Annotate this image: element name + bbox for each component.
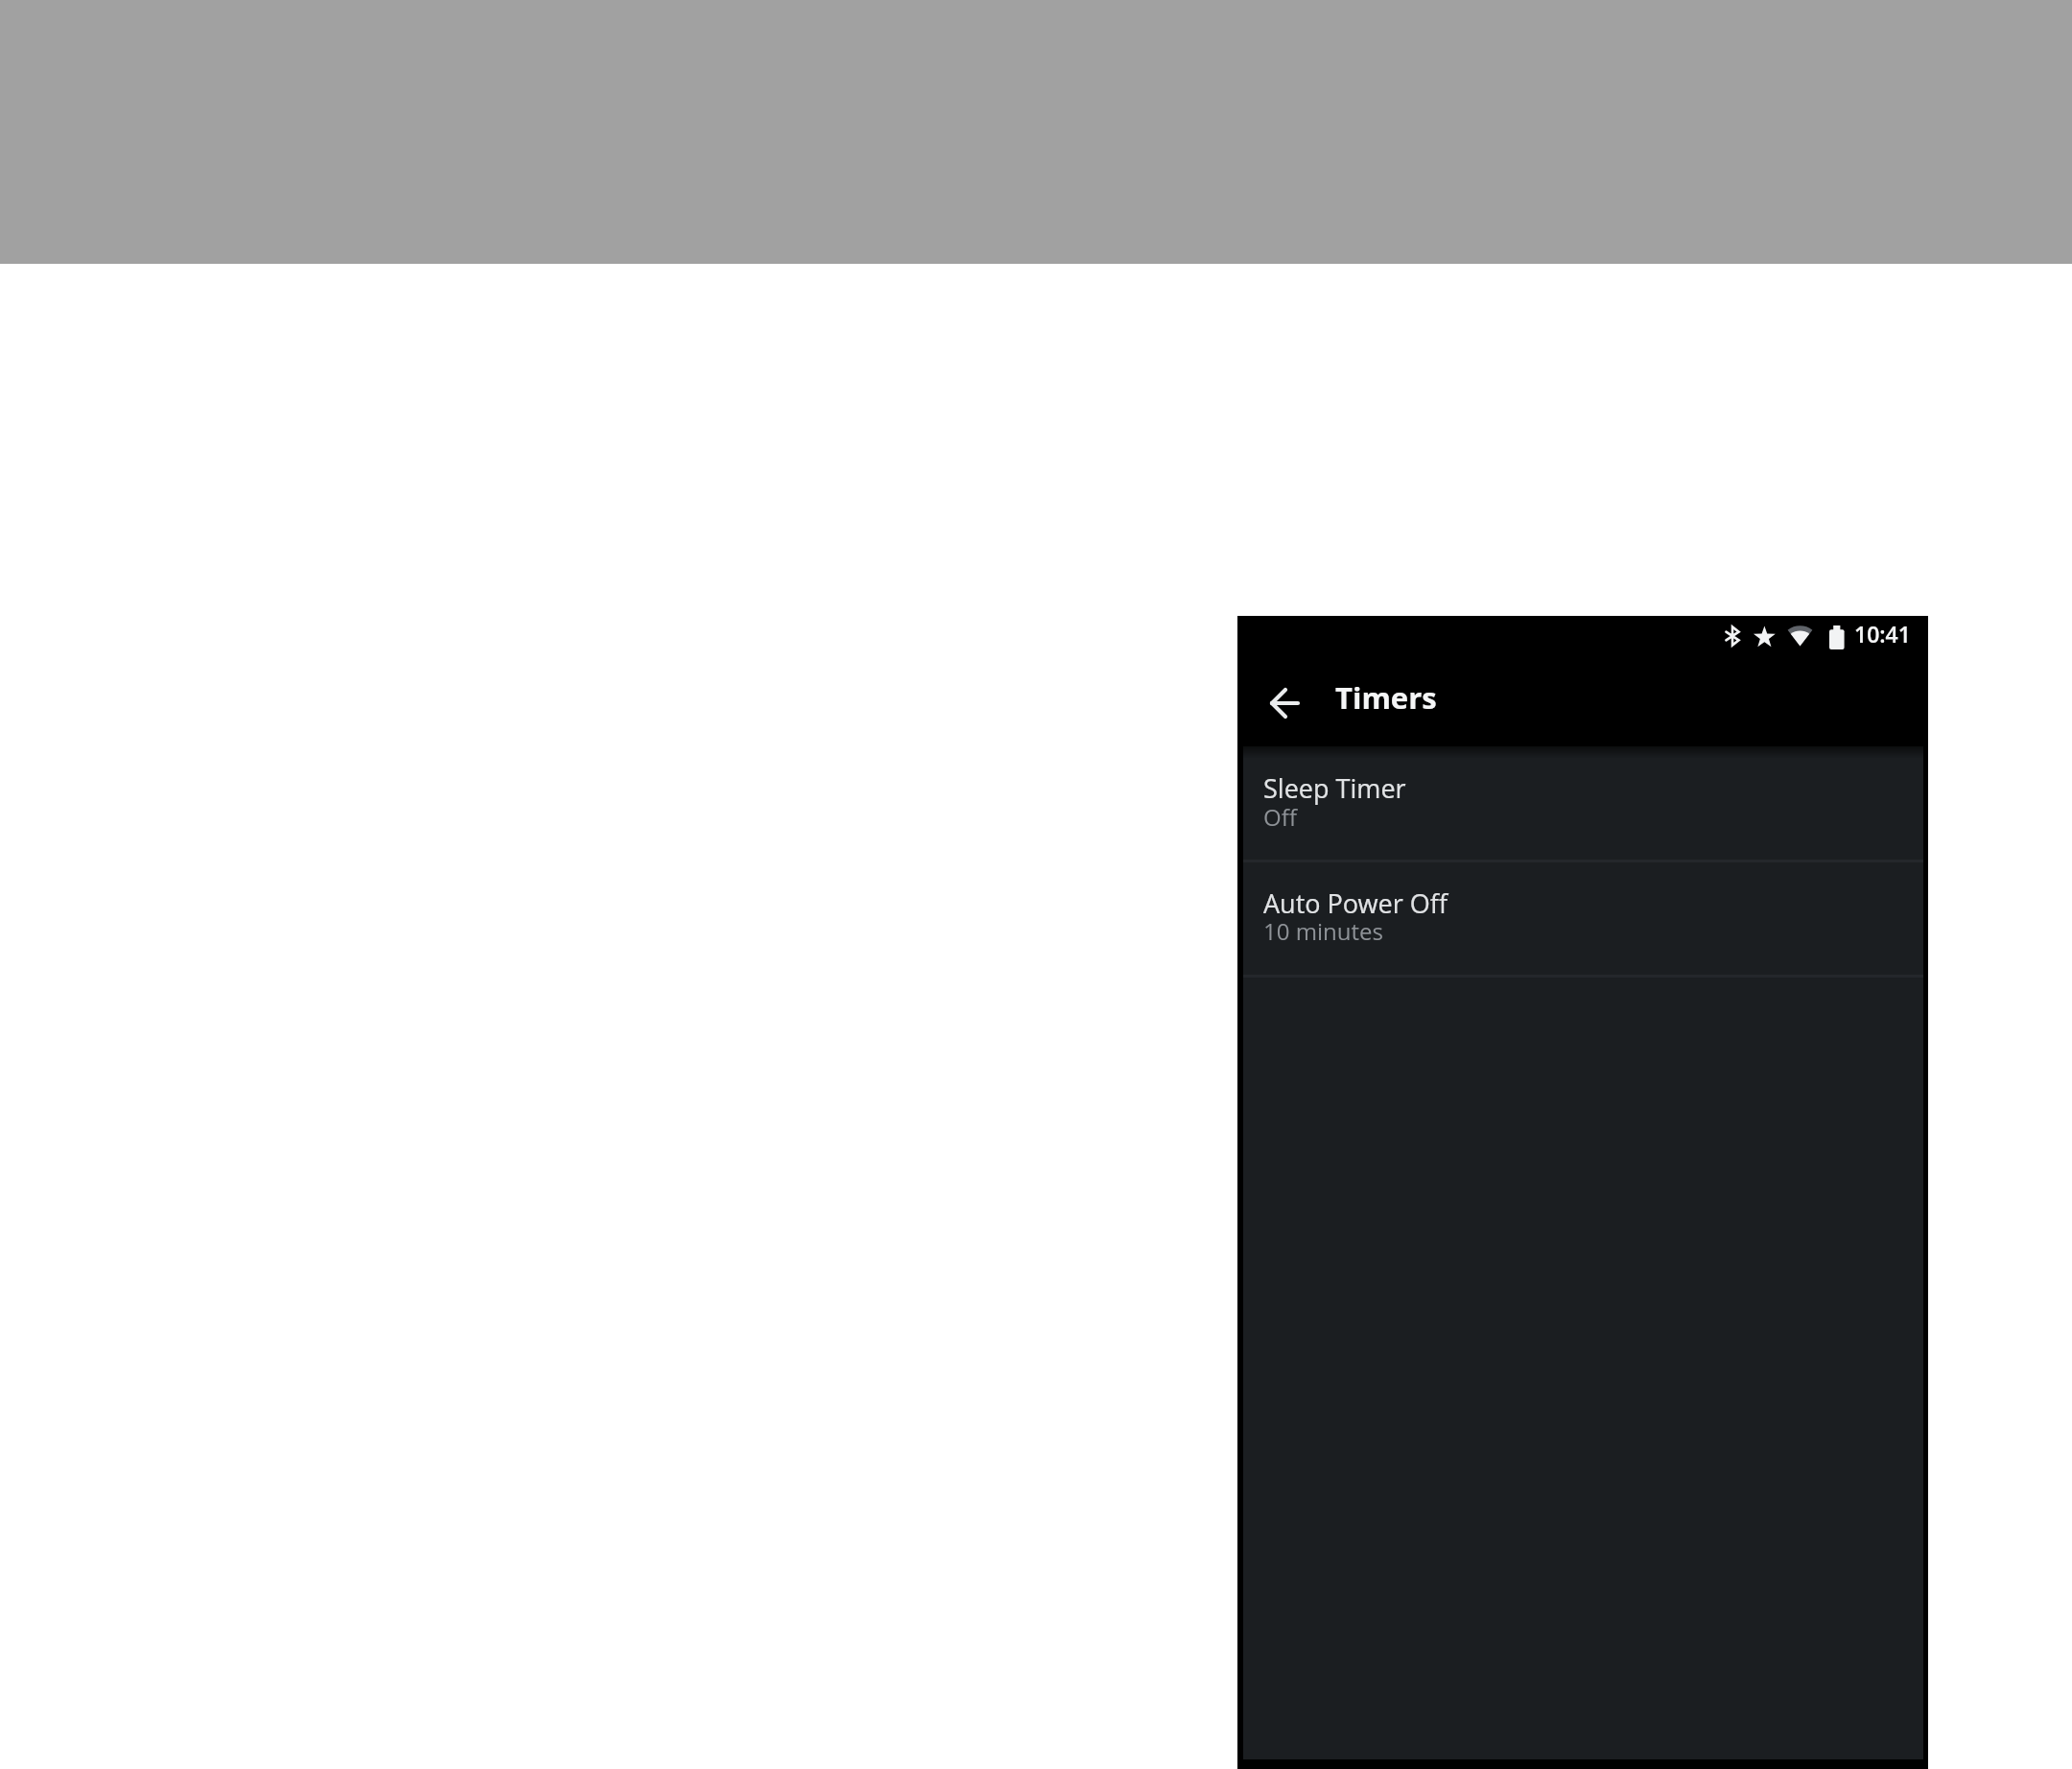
staticText: Timers bbox=[1335, 677, 1437, 718]
button[interactable] bbox=[1261, 680, 1307, 726]
staticText: 10:41 bbox=[1854, 619, 1911, 649]
staticText: Off bbox=[1263, 801, 1297, 833]
staticText: 10 minutes bbox=[1263, 915, 1383, 947]
button[interactable]: Auto Power Off bbox=[1243, 862, 1923, 975]
staticText: Sleep Timer bbox=[1263, 770, 1406, 806]
button[interactable]: Sleep Timer bbox=[1243, 746, 1923, 860]
staticText: Auto Power Off bbox=[1263, 885, 1448, 921]
